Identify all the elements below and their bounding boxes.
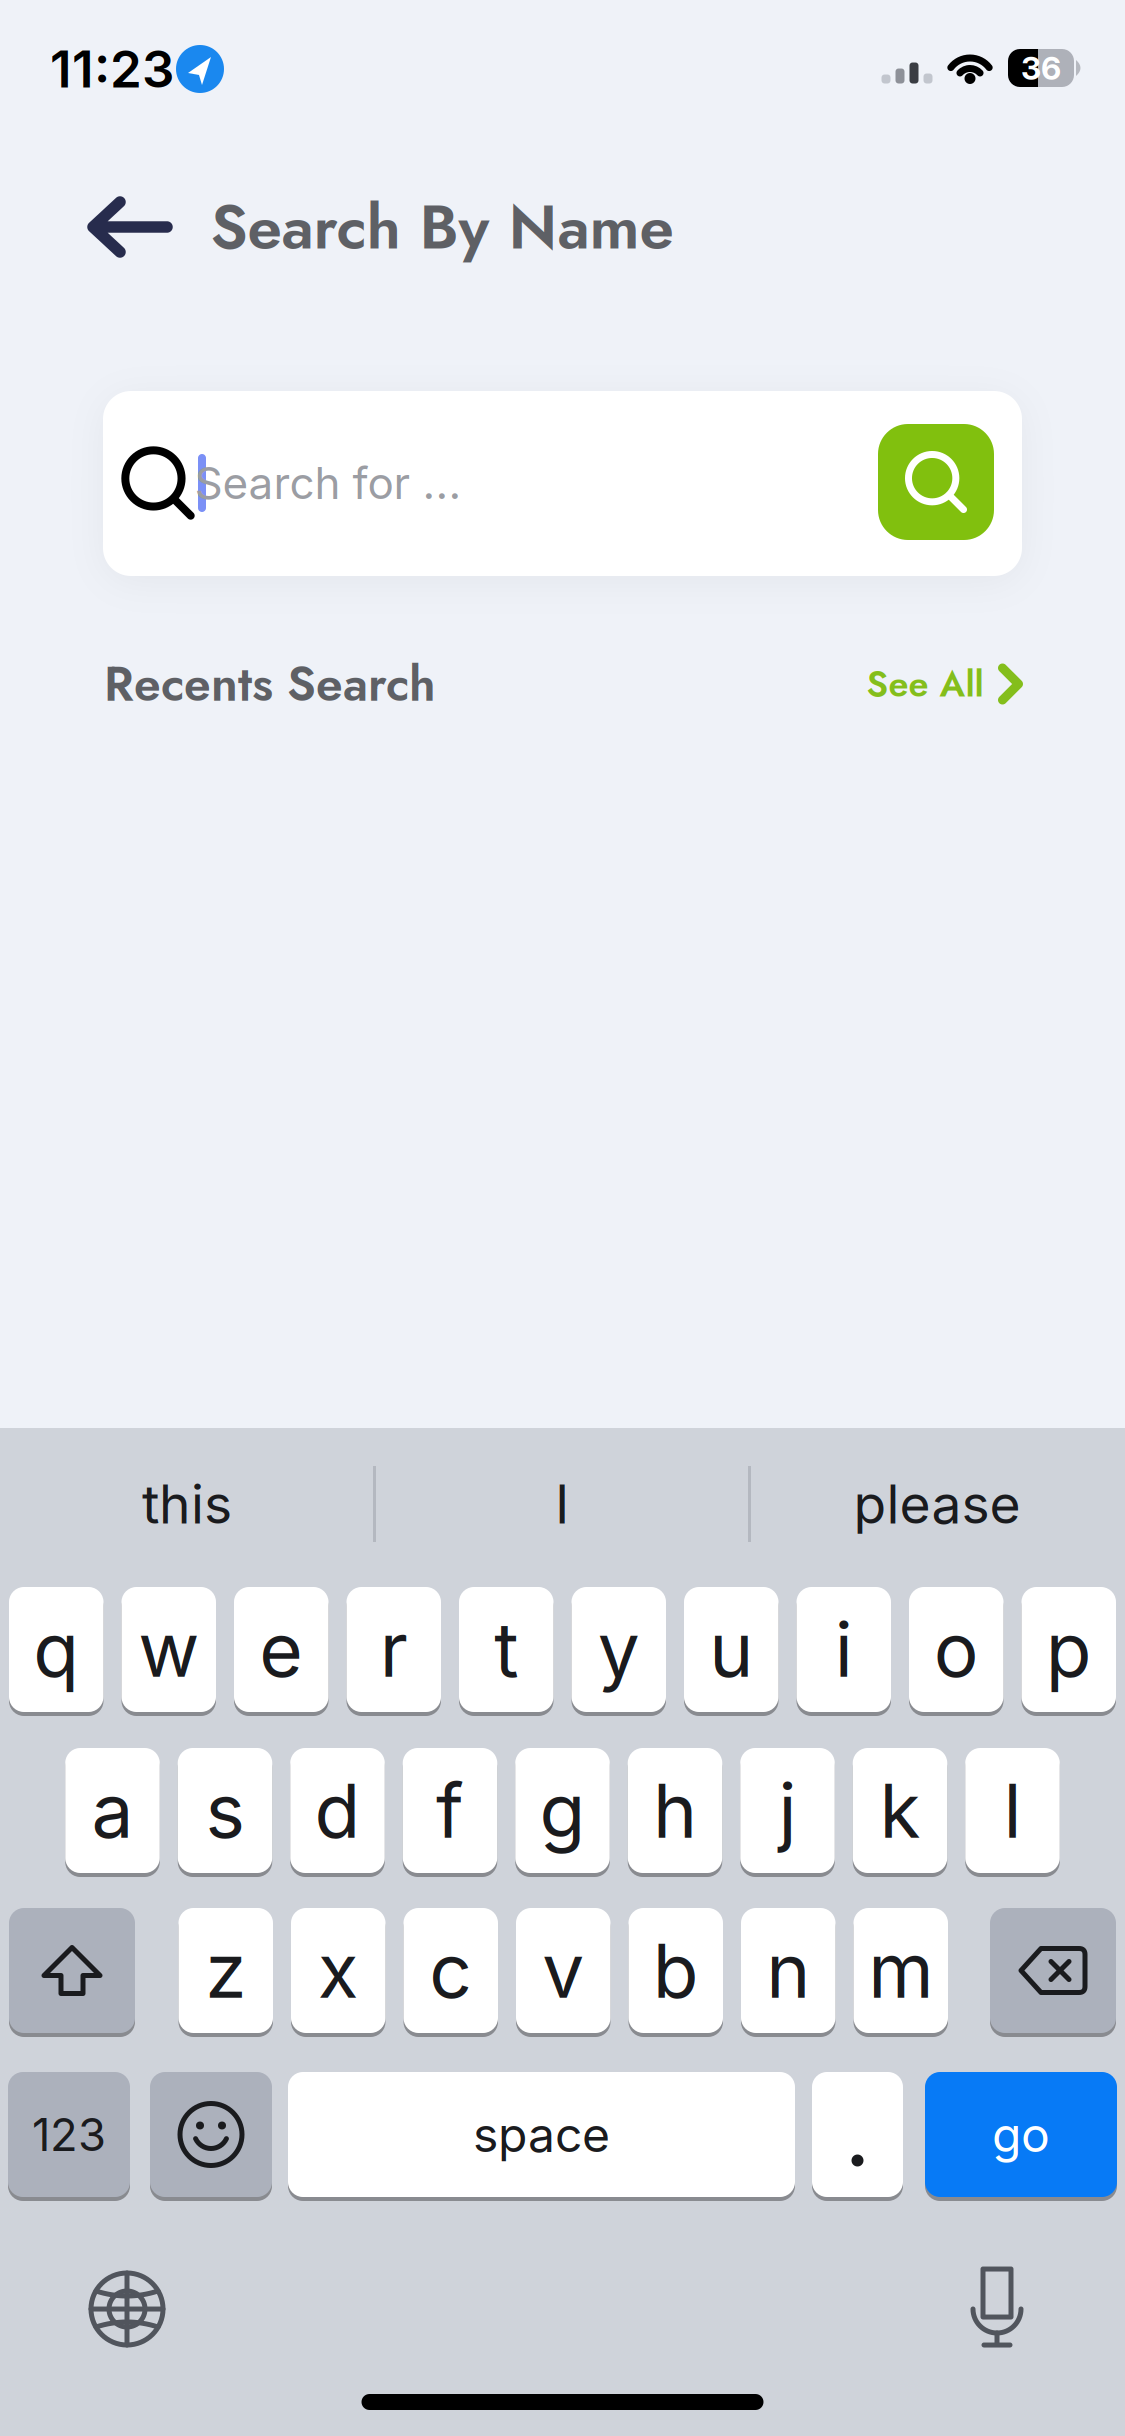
button[interactable]: Back [70,182,190,272]
button[interactable]: Delete [990,1908,1116,2033]
staticText: r [380,1604,408,1695]
staticText: space [473,2105,610,2164]
button[interactable]: See All [866,658,1023,710]
button[interactable]: b [628,1908,723,2033]
staticText: k [879,1765,920,1856]
staticText: See All [866,658,983,710]
staticText: w [138,1604,199,1695]
staticText: p [1046,1604,1092,1695]
button[interactable]: go [925,2072,1117,2197]
staticText: 11:23 [50,38,174,100]
staticText: n [766,1925,810,2016]
staticText: o [934,1604,979,1695]
button[interactable]: period [812,2072,903,2197]
staticText: go [992,2105,1050,2164]
button[interactable]: m [853,1908,948,2033]
staticText: c [429,1925,472,2016]
button[interactable]: h [628,1748,722,1873]
button[interactable]: z [178,1908,273,2033]
button[interactable]: Next keyboard [88,2270,166,2348]
button[interactable]: r [346,1587,441,1712]
staticText: f [436,1765,464,1856]
button[interactable]: this [7,1444,367,1564]
staticText: e [259,1604,303,1695]
button[interactable]: Emoji [150,2072,272,2197]
button[interactable]: u [684,1587,778,1712]
staticText: j [778,1765,796,1856]
button[interactable]: f [403,1748,497,1873]
button[interactable]: t [459,1587,553,1712]
staticText: y [598,1604,640,1695]
button[interactable]: n [741,1908,835,2033]
button[interactable]: k [853,1748,947,1873]
staticText: t [494,1604,518,1695]
staticText: i [835,1604,853,1695]
staticText: s [205,1765,244,1856]
button[interactable]: Numbers [8,2072,130,2197]
button[interactable]: x [291,1908,385,2033]
staticText: v [542,1925,584,2016]
button[interactable]: y [571,1587,666,1712]
button[interactable]: please [757,1444,1117,1564]
staticText: 123 [32,2107,106,2162]
staticText: 36 [1021,49,1061,87]
staticText: b [653,1925,699,2016]
staticText: z [205,1925,246,2016]
staticText: please [853,1472,1020,1536]
button[interactable]: c [403,1908,498,2033]
staticText: m [868,1925,933,2016]
staticText: x [318,1925,359,2016]
button[interactable]: Shift [9,1908,135,2033]
staticText: I [555,1472,569,1536]
staticText: a [91,1765,133,1856]
button[interactable]: s [178,1748,272,1873]
staticText: this [142,1472,232,1536]
button[interactable]: j [740,1748,835,1873]
button[interactable]: q [9,1587,103,1712]
staticText: h [653,1765,697,1856]
button[interactable]: p [1021,1587,1116,1712]
staticText: q [33,1604,79,1695]
button[interactable]: I [382,1444,742,1564]
button[interactable]: d [290,1748,385,1873]
button[interactable]: e [234,1587,328,1712]
button[interactable]: w [121,1587,216,1712]
button[interactable]: space [288,2072,795,2197]
staticText: Search By Name [210,182,673,272]
staticText: l [1003,1765,1021,1856]
staticText: Search for ... [194,456,461,510]
button[interactable]: v [516,1908,610,2033]
staticText: Recents Search [104,649,436,719]
staticText: d [314,1765,360,1856]
staticText: g [539,1765,585,1856]
button[interactable]: Search [878,424,994,540]
button[interactable]: a [65,1748,160,1873]
button[interactable]: l [965,1748,1060,1873]
staticText: u [709,1604,753,1695]
button[interactable]: o [909,1587,1003,1712]
button[interactable]: Dictation [958,2267,1036,2349]
button[interactable]: i [796,1587,891,1712]
button[interactable]: g [515,1748,610,1873]
